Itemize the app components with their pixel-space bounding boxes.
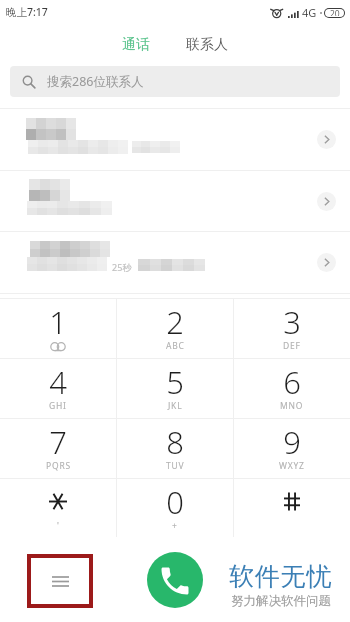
button[interactable]: 详情 [0, 171, 350, 231]
button[interactable]: 4 [0, 359, 116, 418]
staticText: 8 [166, 421, 184, 463]
staticText: PQRS [46, 460, 71, 472]
button[interactable]: 6 [234, 359, 350, 418]
staticText: 1 [49, 301, 67, 343]
button[interactable] [234, 479, 350, 538]
staticText: 搜索286位联系人 [47, 73, 144, 90]
button[interactable]: 5 [117, 359, 233, 418]
staticText: 晚上7:17 [6, 5, 48, 19]
staticText: WXYZ [279, 460, 305, 472]
button[interactable]: 搜索286位联系人 [10, 66, 340, 97]
button[interactable]: 菜单 [31, 558, 89, 604]
button[interactable]: 联系人 [174, 30, 240, 60]
staticText: 5 [166, 361, 184, 403]
staticText: GHI [49, 400, 67, 412]
button[interactable]: 详情 [0, 109, 350, 170]
staticText: JKL [168, 400, 183, 412]
staticText: 软件无忧 [229, 561, 333, 592]
button[interactable]: 拨号 [147, 552, 203, 608]
button[interactable]: ' [0, 479, 116, 538]
staticText: TUV [166, 460, 185, 472]
staticText: ABC [166, 340, 185, 352]
staticText: 25秒 [112, 261, 132, 273]
staticText: DEF [283, 340, 301, 352]
button[interactable]: 7 [0, 419, 116, 478]
staticText: 3 [283, 301, 301, 343]
staticText: + [172, 520, 178, 532]
staticText: 4G [302, 5, 317, 20]
staticText: 4 [49, 361, 67, 403]
button[interactable]: 25秒 [0, 232, 350, 293]
staticText: 通话 [122, 36, 150, 54]
button[interactable]: 详情 [317, 192, 336, 211]
button[interactable]: 详情 [317, 130, 336, 149]
staticText: 7 [49, 421, 67, 463]
button[interactable]: 3 [234, 299, 350, 359]
button[interactable]: 通话 [110, 30, 162, 60]
button[interactable]: 1 [0, 299, 116, 359]
staticText: 努力解决软件问题 [231, 593, 331, 609]
button[interactable]: 8 [117, 419, 233, 478]
button[interactable]: 0 [117, 479, 233, 538]
button[interactable]: 9 [234, 419, 350, 478]
staticText: 6 [283, 361, 301, 403]
staticText: 0 [166, 481, 184, 523]
staticText: 9 [283, 421, 301, 463]
staticText: ' [57, 520, 60, 532]
staticText: 20 [330, 9, 340, 16]
staticText: 联系人 [186, 36, 228, 54]
button[interactable]: 2 [117, 299, 233, 359]
staticText: MNO [280, 400, 304, 412]
button[interactable]: 详情 [317, 253, 336, 272]
staticText: 2 [166, 301, 184, 343]
